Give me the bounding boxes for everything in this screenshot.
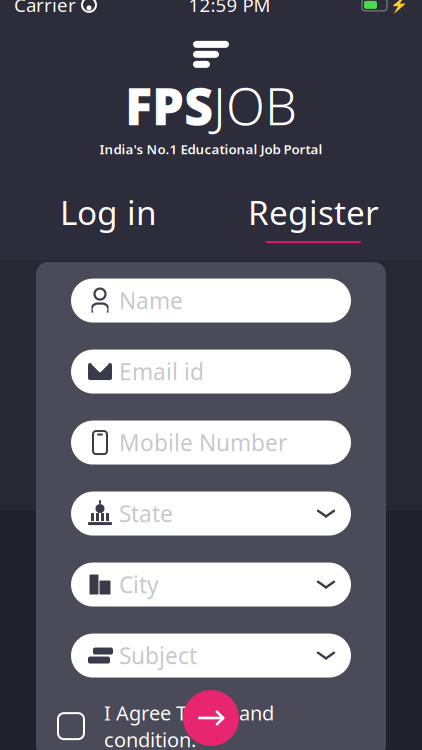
button[interactable]: Email id [71,350,351,394]
staticText: Register [248,190,379,234]
button[interactable]: City [71,563,351,607]
button[interactable]: Register [211,182,416,251]
button[interactable]: Mobile Number [71,421,351,465]
staticText: JOB [213,72,297,139]
button[interactable]: Name [71,279,351,323]
button[interactable]: Submit registration [183,690,239,746]
staticText: City [119,569,159,600]
staticText: India's No.1 Educational Job Portal [99,140,322,158]
staticText: ⚡ [390,0,408,13]
button[interactable]: Subject [71,634,351,678]
staticText: 12:59 PM [188,0,270,17]
staticText: FPS [125,72,213,139]
button[interactable]: Log in [6,182,211,251]
staticText: I Agree Terms and condition. [104,700,274,750]
button[interactable]: I Agree Terms and condition. [36,678,386,750]
staticText: Name [119,285,183,316]
button[interactable]: State [71,492,351,536]
staticText: Log in [60,190,157,234]
staticText: Email id [119,356,204,387]
staticText: Subject [119,640,197,671]
staticText: Mobile Number [119,427,287,458]
staticText: State [119,498,173,529]
staticText: Carrier [14,0,76,17]
